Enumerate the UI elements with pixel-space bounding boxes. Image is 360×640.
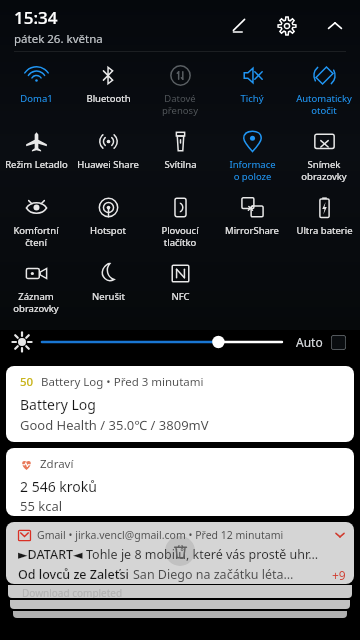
button[interactable]: 50 — [6, 366, 354, 442]
staticText: Auto — [296, 334, 323, 350]
button[interactable]: Settings — [274, 13, 300, 39]
button[interactable]: Režim Letadlo — [0, 122, 72, 188]
staticText: San Diego na začátku léta… — [133, 566, 294, 583]
button[interactable]: Zdraví — [6, 448, 354, 516]
staticText: ►DATART◄ — [18, 546, 86, 563]
staticText: Automaticky otočit — [296, 92, 352, 116]
staticText: Svítilna — [164, 158, 197, 171]
button[interactable]: NFC — [144, 254, 216, 320]
staticText: pátek 26. května — [14, 31, 103, 47]
button[interactable]: Datové přenosy — [144, 56, 216, 122]
staticText: Good Health / 35.0℃ / 3809mV — [20, 416, 209, 434]
staticText: Huawei Share — [77, 158, 139, 171]
button[interactable]: Auto — [294, 334, 348, 350]
button[interactable]: Informace o poloze — [216, 122, 288, 188]
staticText: Ultra baterie — [296, 224, 353, 237]
staticText: Download completed — [22, 586, 123, 598]
button[interactable]: Hotspot — [72, 188, 144, 254]
staticText: Tohle je 8 mobilů, které vás prostě uhr… — [86, 546, 319, 563]
staticText: Doma1 — [20, 92, 53, 105]
staticText: Informace o poloze — [229, 158, 276, 182]
staticText: Snímek obrazovky — [301, 158, 347, 182]
staticText: Záznam obrazovky — [13, 290, 59, 314]
button[interactable]: Nerušit — [72, 254, 144, 320]
other: Delete — [165, 536, 195, 566]
button[interactable]: Bluetooth — [72, 56, 144, 122]
staticText: Nerušit — [92, 290, 125, 303]
staticText: NFC — [171, 290, 190, 303]
staticText: Datové přenosy — [162, 92, 198, 116]
staticText: Hotspot — [90, 224, 126, 237]
button[interactable]: Záznam obrazovky — [0, 254, 72, 320]
staticText: Tichý — [240, 92, 264, 105]
button[interactable]: Ultra baterie — [288, 188, 360, 254]
button[interactable]: Edit — [226, 13, 252, 39]
button[interactable]: Svítilna — [144, 122, 216, 188]
button[interactable] — [42, 330, 282, 354]
button[interactable]: Plovoucí tlačítko — [144, 188, 216, 254]
staticText: Zdraví — [40, 456, 74, 472]
staticText: 2 546 kroků — [20, 477, 97, 496]
staticText: +9 — [332, 567, 346, 583]
staticText: 55 kcal — [20, 497, 63, 515]
button[interactable]: Huawei Share — [72, 122, 144, 188]
button[interactable]: Komfortní čtení — [0, 188, 72, 254]
staticText: Bluetooth — [86, 92, 131, 105]
staticText: Režim Letadlo — [5, 158, 68, 171]
button[interactable]: Automaticky otočit — [288, 56, 360, 122]
staticText: MirrorShare — [225, 224, 279, 237]
staticText: 50 — [20, 374, 34, 390]
staticText: Komfortní čtení — [13, 224, 59, 248]
button[interactable]: Tichý — [216, 56, 288, 122]
staticText: Plovoucí tlačítko — [161, 224, 199, 248]
button[interactable]: Snímek obrazovky — [288, 122, 360, 188]
staticText: Battery Log — [20, 395, 96, 414]
staticText: Battery Log • Před 3 minutami — [41, 374, 204, 390]
staticText: Od lovců ze Zaleťsi — [18, 566, 133, 583]
staticText: 15:34 — [14, 6, 58, 29]
button[interactable]: Doma1 — [0, 56, 72, 122]
button[interactable]: Collapse — [322, 13, 348, 39]
button[interactable]: MirrorShare — [216, 188, 288, 254]
button[interactable]: Gmail • jirka.vencl@gmail.com • Před 12 … — [6, 522, 354, 584]
staticText: Gmail • jirka.vencl@gmail.com • Před 12 … — [37, 528, 284, 542]
